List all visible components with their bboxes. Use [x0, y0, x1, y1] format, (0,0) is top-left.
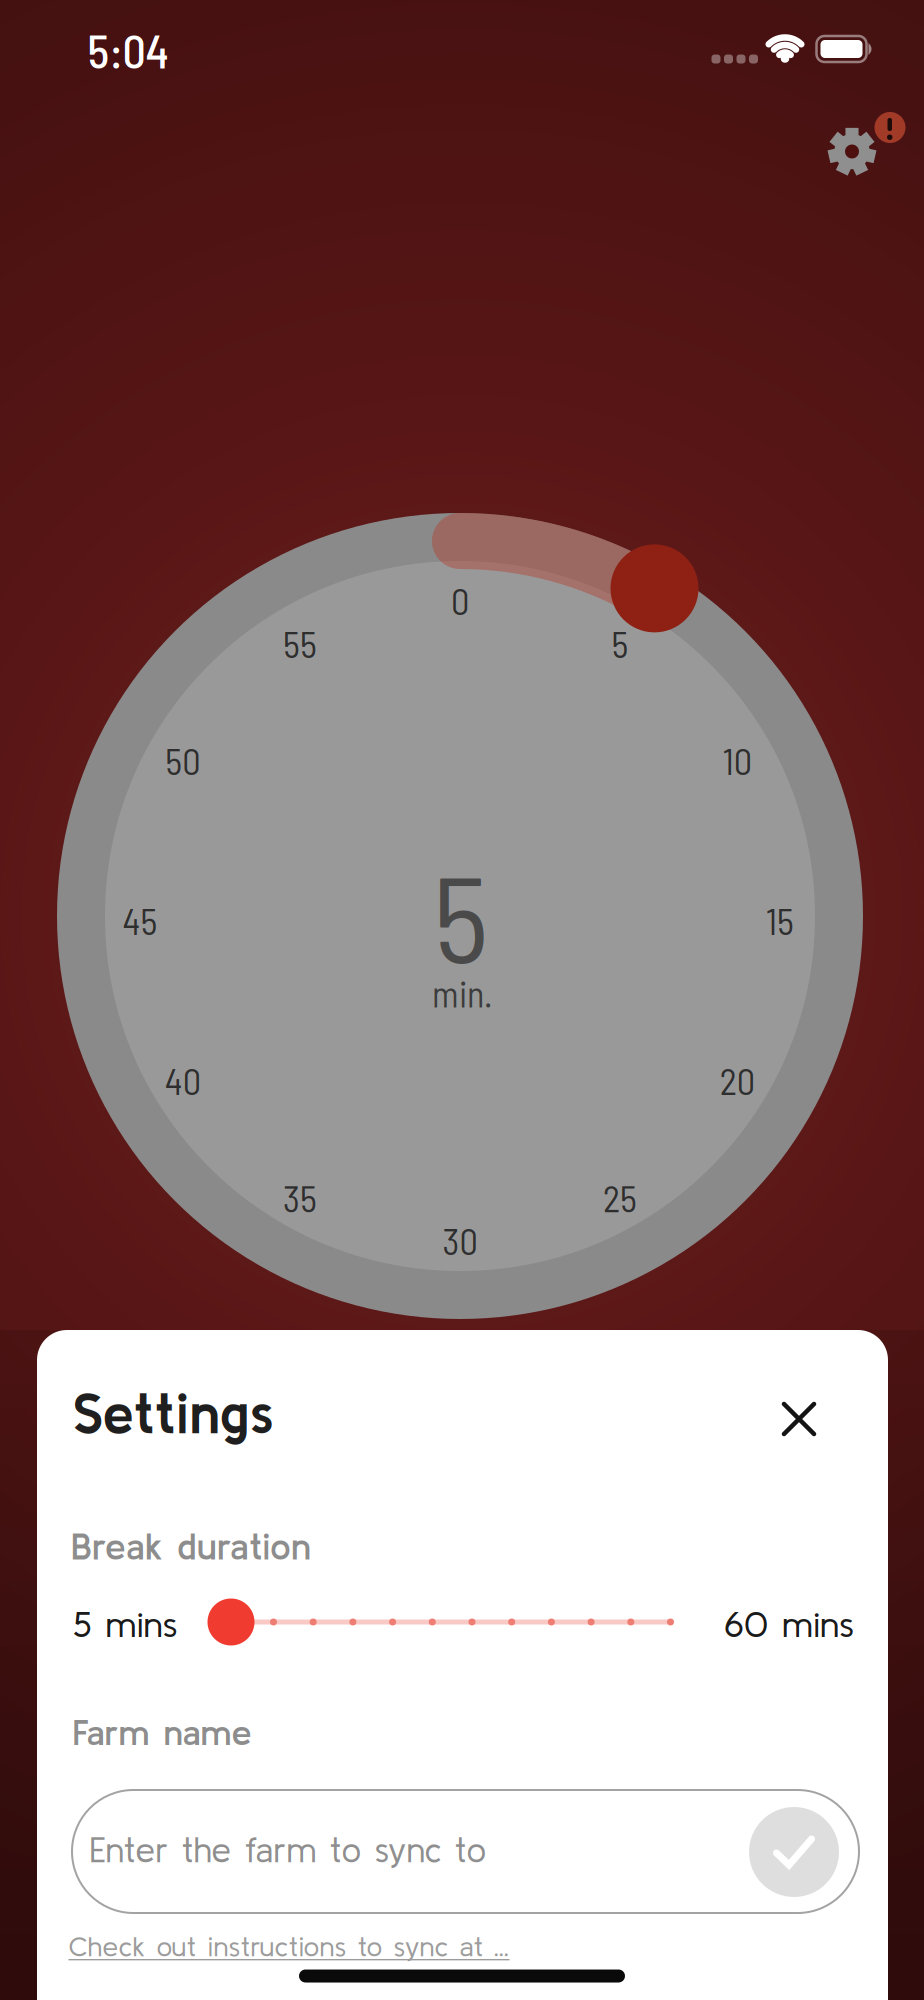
button[interactable]: Set break length [610, 544, 698, 632]
staticText: min. [432, 971, 492, 1015]
staticText: Farm name [72, 1712, 251, 1752]
staticText: 10 [723, 739, 752, 782]
button[interactable]: Enter the farm to sync to [72, 1790, 859, 1913]
button[interactable]: Confirm farm name [749, 1807, 839, 1897]
staticText: 60 mins [724, 1604, 854, 1644]
button[interactable]: Break duration slider [207, 1579, 677, 1665]
staticText: 55 [283, 621, 317, 665]
button[interactable]: Close [770, 1390, 828, 1448]
staticText: 35 [283, 1176, 317, 1219]
staticText: Break duration [71, 1525, 311, 1567]
staticText: Enter the farm to sync to [89, 1830, 486, 1869]
staticText: 50 [165, 739, 200, 782]
staticText: 45 [122, 899, 157, 942]
staticText: 5 [611, 621, 628, 665]
button[interactable]: Settings [807, 112, 917, 192]
button[interactable]: Check out instructions to sync at ... [68, 1930, 509, 1962]
staticText: 5 mins [72, 1604, 177, 1644]
staticText: 40 [165, 1059, 201, 1102]
staticText: 15 [766, 899, 794, 942]
staticText: 5:04 [87, 22, 168, 78]
staticText: Settings [72, 1381, 273, 1445]
staticText: 5 [433, 842, 489, 988]
staticText: Check out instructions to sync at ... [68, 1930, 509, 1962]
staticText: 0 [451, 579, 469, 622]
staticText: 20 [720, 1059, 755, 1102]
staticText: 25 [603, 1176, 637, 1219]
staticText: 30 [442, 1219, 477, 1262]
